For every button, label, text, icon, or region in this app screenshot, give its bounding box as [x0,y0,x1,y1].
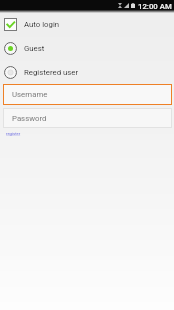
staticText: Auto login [24,20,60,29]
staticText: Username [12,90,48,99]
staticText: 12:00 AM [138,2,172,11]
staticText: Password [12,114,47,123]
other: Battery [131,3,135,8]
button[interactable]: register [6,131,21,136]
button[interactable]: Password [3,108,172,128]
staticText: Guest [24,44,45,53]
staticText: register [6,131,21,136]
staticText: Registered user [24,68,79,77]
button[interactable]: Username [3,84,172,105]
other: Network status [118,3,122,8]
other: Signal strength [124,3,129,8]
button[interactable]: Registered user [0,65,174,79]
button[interactable]: Guest [0,41,174,55]
button[interactable]: Auto login [0,17,174,31]
